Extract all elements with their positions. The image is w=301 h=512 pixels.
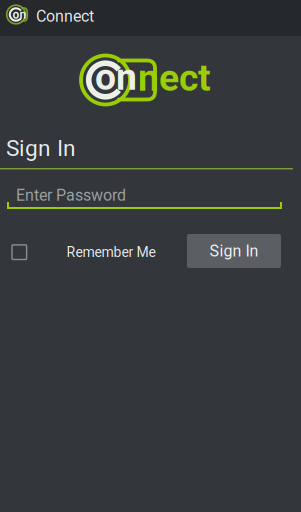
staticText: on bbox=[95, 55, 137, 99]
staticText: Sign In bbox=[6, 135, 76, 162]
staticText: Remember Me bbox=[67, 244, 156, 260]
staticText: Enter Password bbox=[16, 186, 126, 205]
button[interactable]: Remember Me bbox=[4, 236, 166, 268]
staticText: Sign In bbox=[209, 242, 258, 260]
button[interactable]: Sign In bbox=[187, 234, 281, 268]
staticText: nect bbox=[138, 56, 211, 100]
staticText: on bbox=[12, 7, 26, 22]
staticText: Connect bbox=[36, 7, 94, 26]
